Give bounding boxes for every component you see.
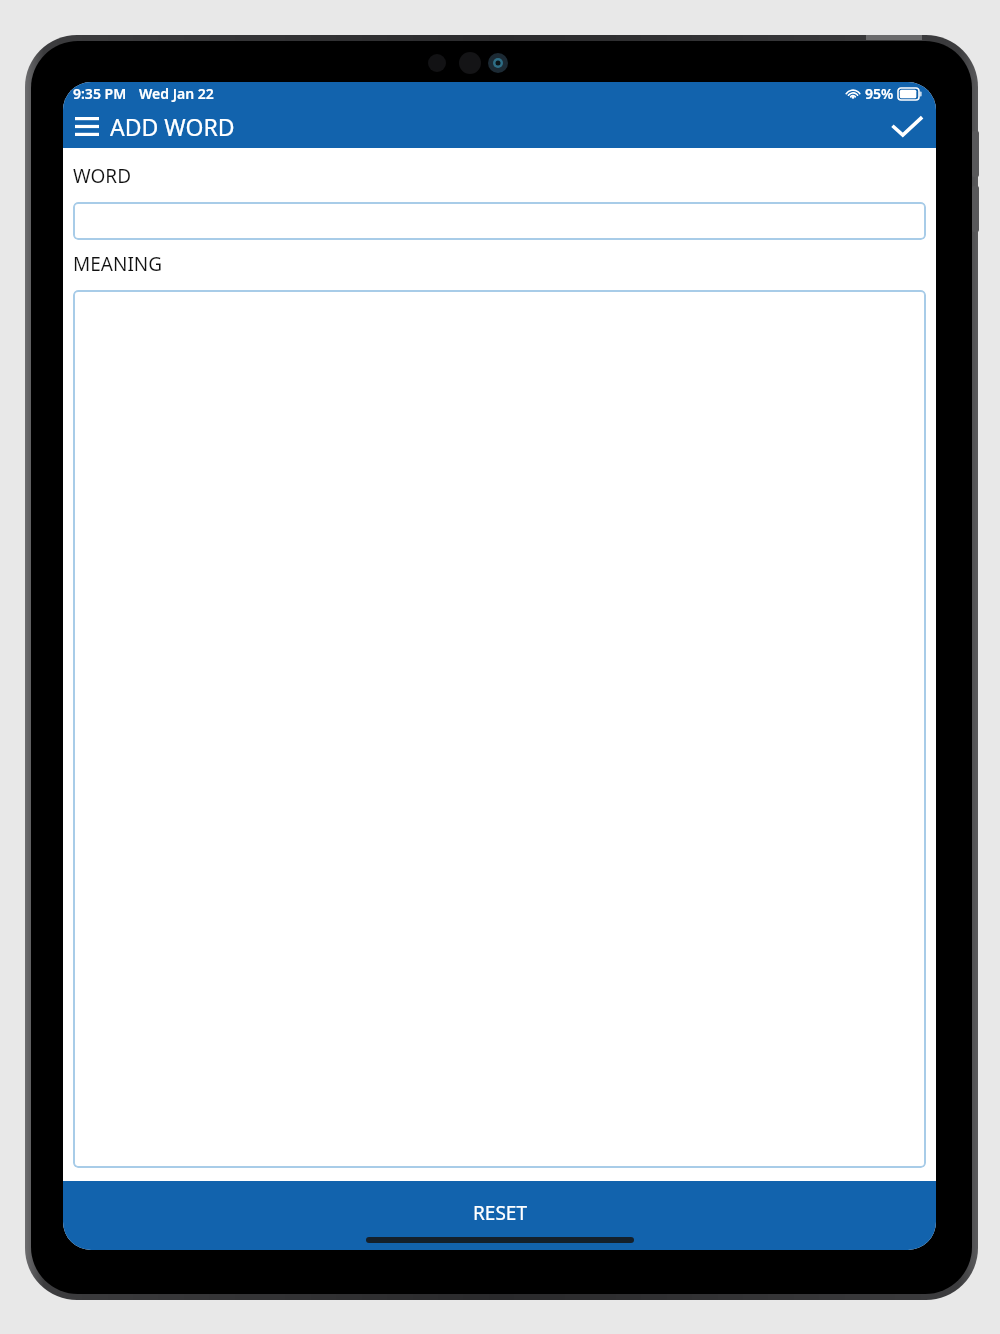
button[interactable]: Meaning input: [73, 290, 926, 1168]
button[interactable]: Word input: [73, 202, 926, 240]
other: Open navigation menu: [75, 117, 99, 136]
button[interactable]: Save word: [878, 109, 936, 145]
staticText: RESET: [473, 1200, 527, 1226]
button[interactable]: RESET: [63, 1181, 936, 1250]
button[interactable]: Open navigation menu: [63, 105, 243, 148]
staticText: Wed Jan 22: [139, 84, 214, 103]
staticText: MEANING: [73, 251, 163, 277]
staticText: 9:35 PM: [73, 84, 127, 103]
staticText: 95%: [865, 84, 894, 103]
staticText: ADD WORD: [110, 111, 235, 142]
staticText: WORD: [73, 163, 132, 189]
